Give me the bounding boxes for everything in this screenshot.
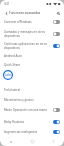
button[interactable]: Sugerencias inteligentes: [0, 129, 64, 134]
button[interactable]: Recents: [0, 137, 22, 146]
staticText: 9:41: [4, 2, 10, 6]
staticText: Modo Operación con una mano: [4, 108, 51, 112]
button[interactable]: Llamadas y mensajes en otros dispositivo…: [53, 32, 60, 36]
button[interactable]: Movimientos y gestos: [0, 95, 64, 105]
staticText: Llamadas y mensajes en otros dispositivo…: [4, 30, 51, 38]
button[interactable]: Labs: [0, 69, 64, 85]
button[interactable]: Android Auto: [0, 51, 64, 61]
button[interactable]: Bixby Routines: [0, 115, 64, 129]
button[interactable]: Conectar a Windows: [53, 20, 60, 24]
button[interactable]: Sugerencias inteligentes: [53, 130, 60, 134]
button[interactable]: Llamadas y mensajes en otros dispositivo…: [0, 27, 64, 41]
staticText: Bixby Routines: [4, 120, 51, 124]
button[interactable]: Modo Operación con una mano: [53, 108, 60, 112]
button[interactable]: Home: [22, 137, 43, 146]
staticText: Labs: [5, 73, 12, 77]
staticText: Funciones avanzadas: [9, 11, 41, 15]
button[interactable]: Bixby Routines: [53, 120, 60, 124]
button[interactable]: Tecla lateral: [0, 85, 64, 95]
button[interactable]: Continuar aplicaciones en otros disposit…: [0, 41, 64, 51]
button[interactable]: Modo Operación con una mano: [0, 105, 64, 115]
staticText: Conectar a Windows: [4, 20, 51, 24]
button[interactable]: Search: [55, 10, 61, 16]
button[interactable]: Conectar a Windows: [0, 17, 64, 27]
staticText: Quick Share: [4, 63, 60, 67]
button[interactable]: Back: [3, 10, 9, 16]
button[interactable]: Quick Share: [0, 61, 64, 69]
staticText: Tecla lateral: [4, 88, 60, 92]
staticText: Continuar aplicaciones en otros disposit…: [4, 42, 51, 50]
staticText: Sugerencias inteligentes: [4, 130, 51, 134]
staticText: Movimientos y gestos: [4, 98, 60, 102]
button[interactable]: Continuar aplicaciones en otros disposit…: [53, 44, 60, 48]
staticText: Android Auto: [4, 54, 60, 58]
button[interactable]: Back: [43, 137, 64, 146]
